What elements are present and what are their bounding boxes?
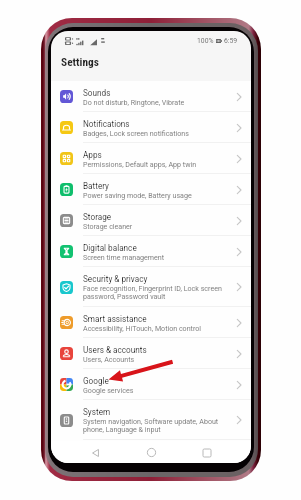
button[interactable]: Notifications <box>51 112 251 143</box>
staticText: System navigation, Software update, Abou… <box>83 417 219 425</box>
staticText: Face recognition, Fingerprint ID, Lock s… <box>83 284 222 292</box>
staticText: Sounds <box>83 88 111 98</box>
staticText: Settings <box>61 55 99 68</box>
staticText: Storage cleaner <box>83 222 133 230</box>
button[interactable]: Storage <box>51 205 251 236</box>
button[interactable]: Sounds <box>51 81 251 112</box>
staticText: Users & accounts <box>83 345 147 355</box>
button[interactable]: Apps <box>51 143 251 174</box>
button[interactable]: Smart assistance <box>51 307 251 338</box>
staticText: Badges, Lock screen notifications <box>83 129 189 137</box>
button[interactable]: Recents <box>196 442 217 463</box>
staticText: Security & privacy <box>83 274 148 284</box>
staticText: Google services <box>83 386 134 394</box>
button[interactable]: Google <box>51 369 251 400</box>
staticText: Accessibility, HiTouch, Motion control <box>83 324 201 332</box>
button[interactable]: Back <box>85 442 106 463</box>
staticText: Notifications <box>83 119 130 129</box>
button[interactable]: Digital balance <box>51 236 251 267</box>
staticText: System <box>83 407 111 417</box>
staticText: phone, Language & input <box>83 425 161 433</box>
staticText: Storage <box>83 212 112 222</box>
button[interactable]: System <box>51 400 251 440</box>
button[interactable]: Users & accounts <box>51 338 251 369</box>
button[interactable]: Battery <box>51 174 251 205</box>
staticText: Smart assistance <box>83 314 147 324</box>
staticText: 6:59 <box>224 37 238 45</box>
staticText: Digital balance <box>83 243 137 253</box>
staticText: 100% <box>197 37 214 45</box>
staticText: Permissions, Default apps, App twin <box>83 160 197 168</box>
staticText: Users, Accounts <box>83 355 135 363</box>
staticText: Screen time management <box>83 253 165 261</box>
staticText: Google <box>83 376 109 386</box>
button[interactable]: Security & privacy <box>51 267 251 307</box>
staticText: Apps <box>83 150 102 160</box>
staticText: password, Password vault <box>83 292 166 300</box>
staticText: Do not disturb, Ringtone, Vibrate <box>83 98 185 106</box>
staticText: Battery <box>83 181 109 191</box>
button[interactable]: Home <box>141 442 162 463</box>
staticText: Power saving mode, Battery usage <box>83 191 192 199</box>
